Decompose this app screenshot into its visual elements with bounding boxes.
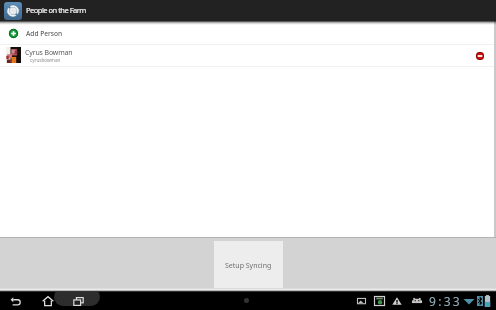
button[interactable]: Back [7,292,24,310]
button[interactable]: Remove person [473,49,487,63]
button[interactable]: Cyrus Bowman [0,45,496,66]
button[interactable]: Home [39,292,56,310]
staticText: cyrusbowman [30,57,61,63]
button[interactable]: App icon, navigate up [4,2,22,20]
staticText: Setup Syncing [225,261,272,271]
staticText: Cyrus Bowman [25,48,73,58]
staticText: 9:33 [429,293,463,309]
button[interactable]: Add Person [0,21,496,44]
staticText: Add Person [26,29,63,38]
staticText: People on the Farm [26,5,86,15]
button[interactable]: Recent apps [70,292,87,310]
button[interactable]: Setup Syncing [214,241,283,288]
